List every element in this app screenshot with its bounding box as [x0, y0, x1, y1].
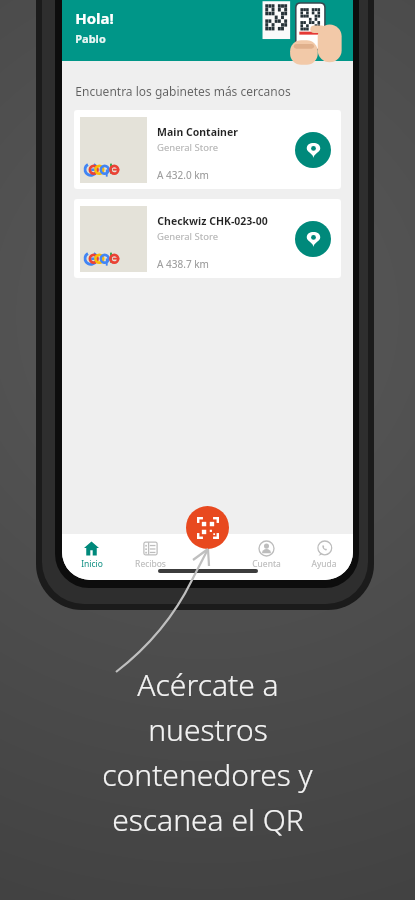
staticText: Ayuda — [311, 558, 337, 570]
staticText: contenedores y — [102, 754, 313, 795]
staticText: A 432.0 km — [157, 168, 209, 182]
staticText: Cuenta — [252, 558, 281, 570]
button[interactable]: Checkwiz CHK-023-00 — [74, 199, 341, 278]
staticText: Main Container — [157, 125, 238, 139]
button[interactable]: Cuenta — [237, 540, 295, 570]
staticText: General Store — [157, 230, 218, 243]
staticText: General Store — [157, 141, 218, 154]
staticText: Recibos — [135, 558, 166, 570]
staticText: Hola! — [75, 8, 114, 28]
staticText: Pablo — [75, 31, 106, 46]
button[interactable]: Inicio — [62, 540, 121, 570]
button[interactable]: Ver en el mapa — [295, 221, 331, 257]
button[interactable]: Main Container — [74, 110, 341, 189]
staticText: Inicio — [81, 558, 103, 570]
button[interactable]: Escanear QR — [186, 506, 229, 549]
staticText: escanea el QR — [112, 799, 304, 840]
button[interactable]: Ver en el mapa — [295, 132, 331, 168]
staticText: Checkwiz CHK-023-00 — [157, 214, 268, 228]
button[interactable]: Recibos — [121, 540, 179, 570]
staticText: Encuentra los gabinetes más cercanos — [75, 83, 291, 99]
button[interactable]: Ayuda — [295, 540, 353, 570]
staticText: A 438.7 km — [157, 257, 209, 271]
staticText: nuestros — [148, 709, 268, 750]
staticText: Acércate a — [137, 664, 279, 705]
